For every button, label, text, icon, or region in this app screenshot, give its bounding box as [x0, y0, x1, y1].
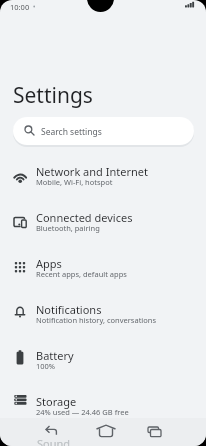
- staticText: Recent apps, default apps: [36, 269, 127, 279]
- button[interactable]: Network and Internet: [0, 154, 206, 200]
- staticText: Battery: [36, 348, 74, 363]
- staticText: Mobile, Wi-Fi, hotspot: [36, 177, 113, 187]
- button[interactable]: Notifications: [0, 292, 206, 338]
- button[interactable]: [147, 424, 162, 437]
- button[interactable]: Apps: [0, 246, 206, 292]
- staticText: 24% used — 24.46 GB free: [36, 407, 129, 417]
- staticText: Sound: [37, 436, 71, 446]
- staticText: 100%: [36, 361, 56, 371]
- staticText: Notifications: [36, 302, 102, 317]
- staticText: Settings: [13, 81, 93, 110]
- button[interactable]: Battery: [0, 338, 206, 384]
- staticText: Notification history, conversations: [36, 315, 157, 325]
- button[interactable]: [44, 424, 58, 436]
- button[interactable]: Storage: [0, 384, 206, 430]
- staticText: Search settings: [41, 126, 102, 138]
- staticText: Apps: [36, 256, 62, 271]
- staticText: Storage: [36, 394, 77, 409]
- staticText: 10:00: [10, 2, 30, 12]
- button[interactable]: Connected devices: [0, 200, 206, 246]
- staticText: Bluetooth, pairing: [36, 223, 100, 233]
- staticText: Network and Internet: [36, 164, 148, 179]
- button[interactable]: [96, 424, 116, 438]
- button[interactable]: Search settings: [13, 117, 194, 145]
- staticText: Connected devices: [36, 210, 133, 225]
